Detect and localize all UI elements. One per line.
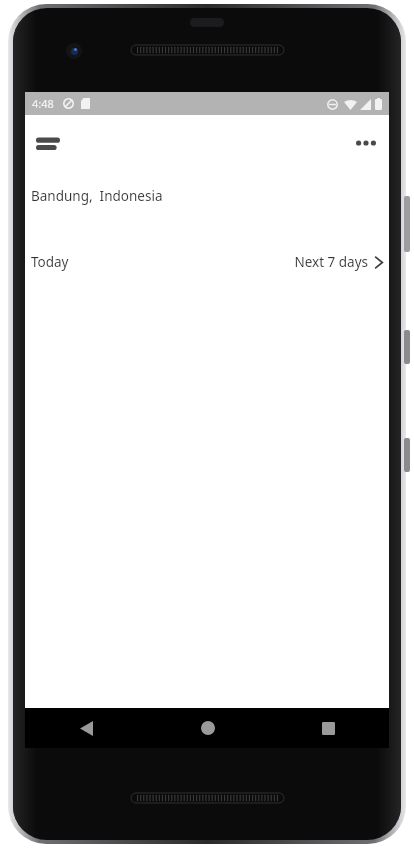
button[interactable]: Next 7 days [286,249,389,275]
staticText: Next 7 days [294,253,368,271]
staticText: Bandung, Indonesia [31,187,163,205]
staticText: Today [31,253,69,271]
staticText: 4:48 [32,96,54,111]
button[interactable]: Recent apps [268,708,389,748]
button[interactable]: Home [147,708,268,748]
button[interactable]: Back [25,708,147,748]
button[interactable]: Menu [27,122,69,164]
button[interactable]: More options [345,122,387,164]
